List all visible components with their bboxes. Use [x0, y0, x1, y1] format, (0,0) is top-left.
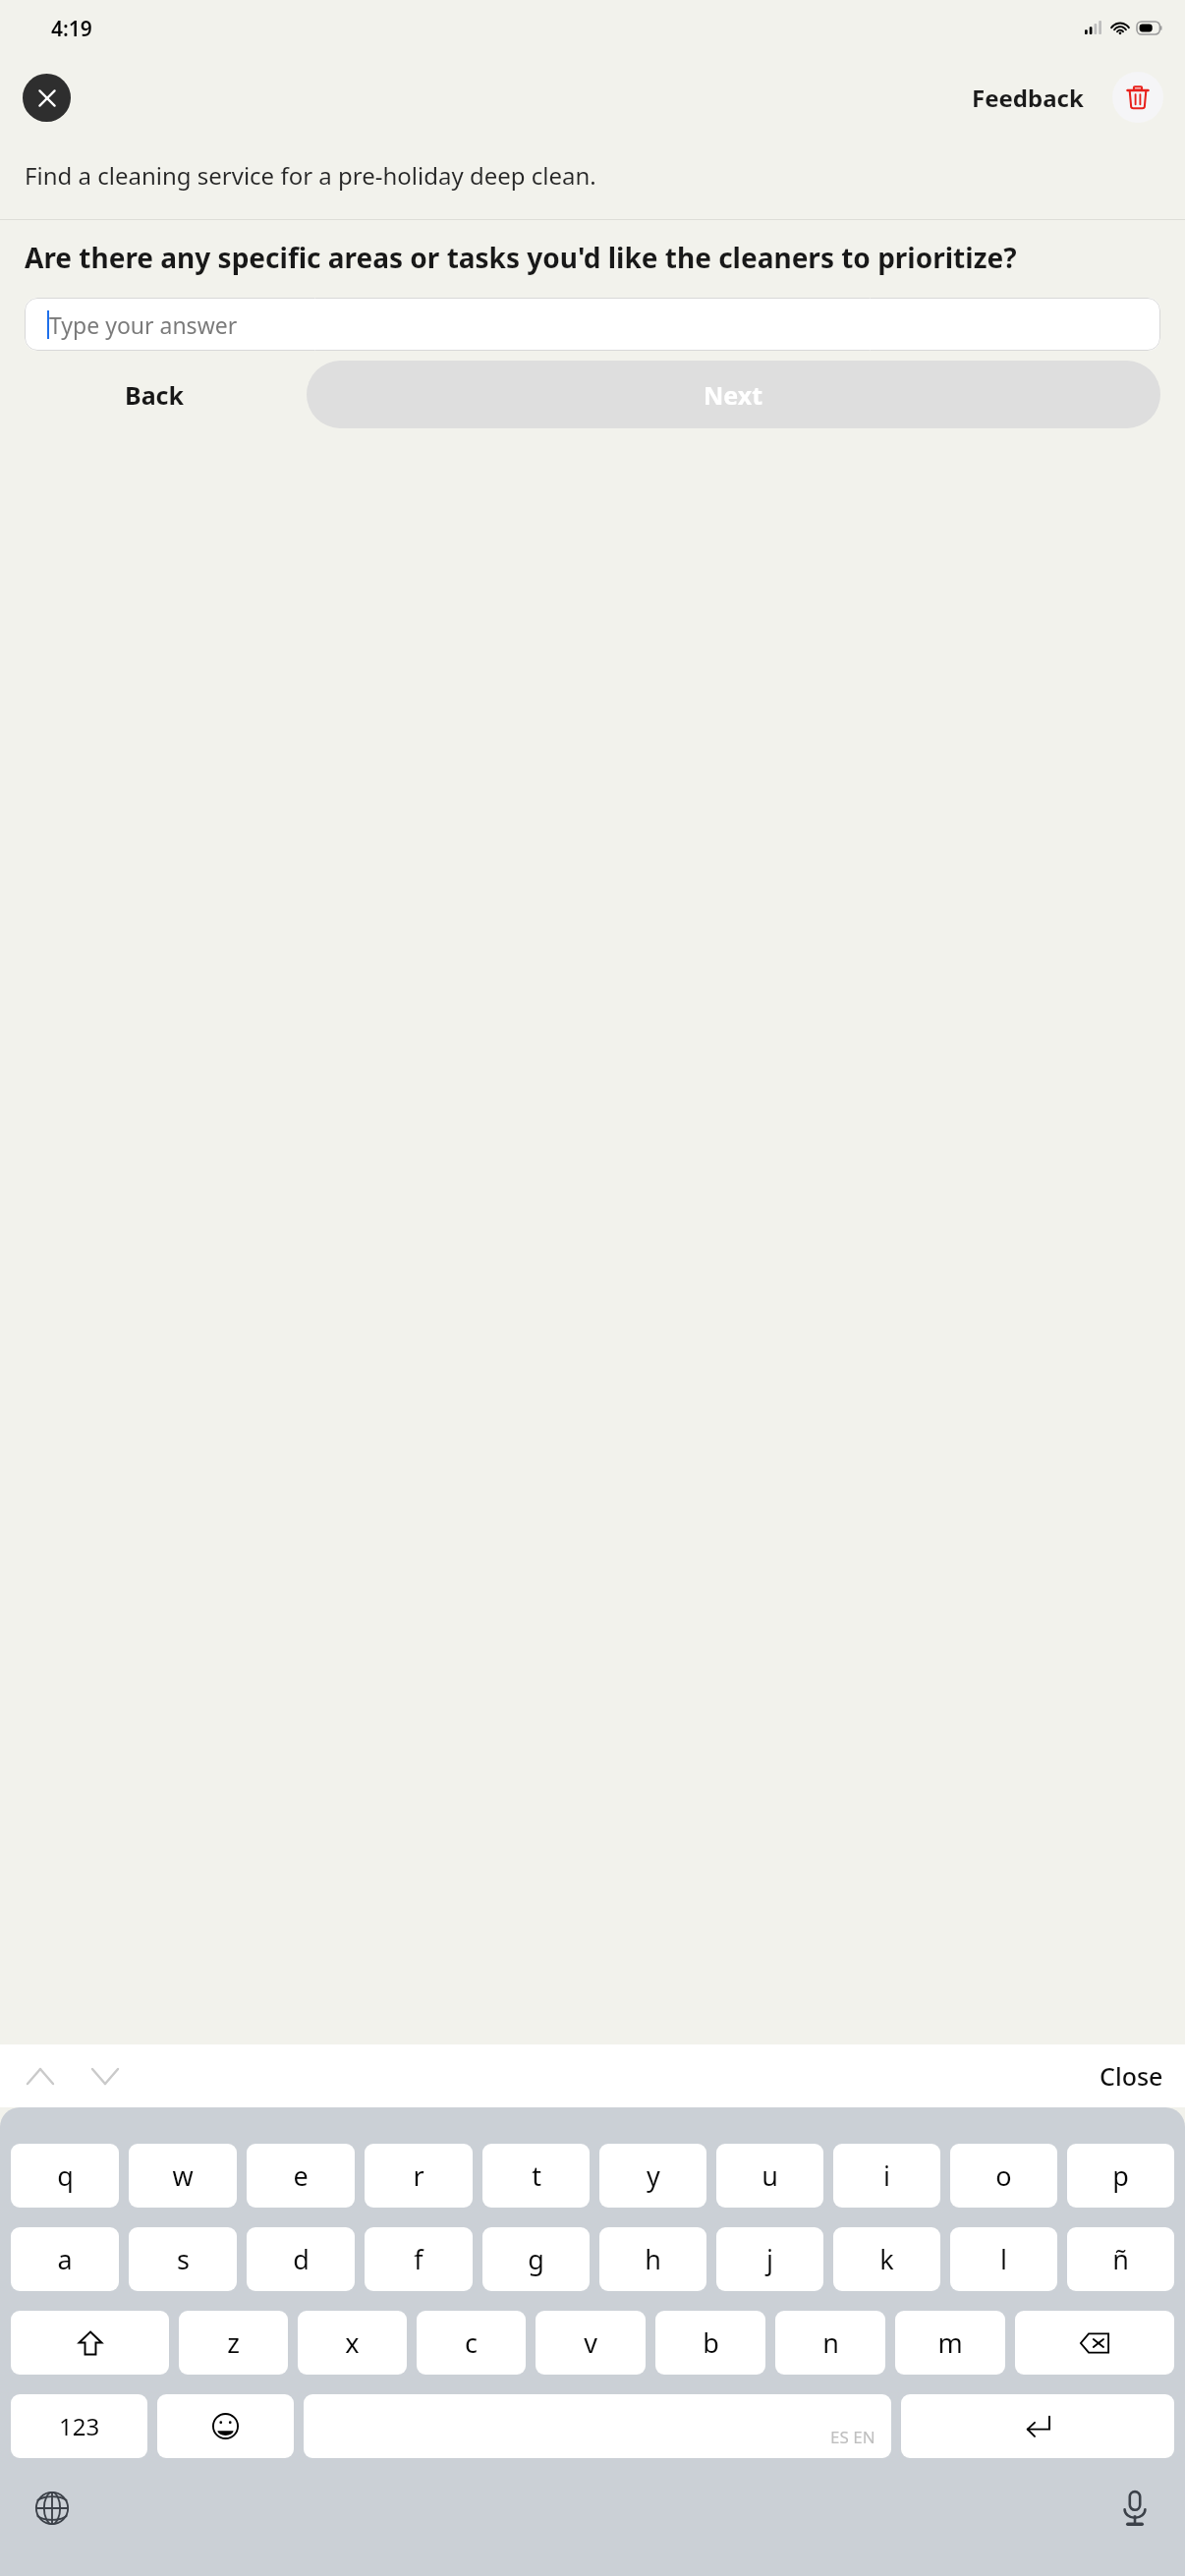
button[interactable]: b	[655, 2311, 765, 2375]
button[interactable]: Change language	[26, 2482, 79, 2535]
button[interactable]: f	[365, 2227, 473, 2291]
staticText: j	[766, 2241, 773, 2277]
button[interactable]: Space	[304, 2394, 891, 2458]
button[interactable]: j	[716, 2227, 823, 2291]
button[interactable]: Delete	[1112, 72, 1163, 123]
button[interactable]: y	[599, 2144, 706, 2208]
button[interactable]: Close	[23, 74, 71, 122]
staticText: i	[883, 2157, 890, 2194]
staticText: x	[345, 2324, 360, 2361]
button[interactable]: Emoji	[157, 2394, 294, 2458]
staticText: Close	[1100, 2059, 1163, 2093]
staticText: Are there any specific areas or tasks yo…	[25, 239, 1017, 276]
button[interactable]: e	[247, 2144, 355, 2208]
button[interactable]: n	[775, 2311, 885, 2375]
button[interactable]: Previous field	[14, 2049, 67, 2102]
staticText: v	[584, 2324, 597, 2361]
staticText: s	[177, 2241, 190, 2277]
button[interactable]: Backspace	[1015, 2311, 1174, 2375]
button[interactable]: Shift	[11, 2311, 169, 2375]
button[interactable]: m	[895, 2311, 1005, 2375]
button[interactable]: s	[129, 2227, 237, 2291]
staticText: d	[293, 2241, 310, 2277]
staticText: z	[227, 2324, 240, 2361]
staticText: Type your answer	[49, 309, 238, 340]
staticText: e	[293, 2157, 309, 2194]
button[interactable]: o	[950, 2144, 1057, 2208]
staticText: c	[465, 2324, 478, 2361]
button[interactable]: x	[298, 2311, 407, 2375]
staticText: f	[414, 2241, 423, 2277]
staticText: a	[57, 2241, 73, 2277]
button[interactable]: 123	[11, 2394, 147, 2458]
staticText: n	[822, 2324, 839, 2361]
staticText: b	[703, 2324, 719, 2361]
staticText: p	[1112, 2157, 1129, 2194]
staticText: w	[172, 2157, 194, 2194]
button[interactable]: k	[833, 2227, 940, 2291]
staticText: q	[57, 2157, 74, 2194]
button[interactable]: p	[1067, 2144, 1174, 2208]
button[interactable]: q	[11, 2144, 119, 2208]
button[interactable]: h	[599, 2227, 706, 2291]
staticText: ES EN	[830, 2426, 875, 2448]
staticText: h	[645, 2241, 661, 2277]
button[interactable]: t	[482, 2144, 590, 2208]
staticText: g	[528, 2241, 544, 2277]
staticText: l	[1000, 2241, 1007, 2277]
button[interactable]: a	[11, 2227, 119, 2291]
button[interactable]: Return	[901, 2394, 1174, 2458]
button[interactable]: d	[247, 2227, 355, 2291]
staticText: y	[647, 2157, 660, 2194]
button[interactable]: c	[417, 2311, 526, 2375]
staticText: Feedback	[972, 82, 1084, 114]
button[interactable]: Next field	[79, 2049, 132, 2102]
staticText: Next	[704, 378, 763, 412]
button[interactable]: l	[950, 2227, 1057, 2291]
staticText: t	[532, 2157, 541, 2194]
staticText: 123	[59, 2410, 100, 2442]
button[interactable]: u	[716, 2144, 823, 2208]
button[interactable]: Back	[25, 361, 285, 428]
staticText: Back	[125, 378, 185, 412]
staticText: 4:19	[51, 15, 92, 43]
button[interactable]: Voice input	[1108, 2482, 1161, 2535]
button[interactable]: z	[179, 2311, 288, 2375]
button[interactable]: i	[833, 2144, 940, 2208]
button[interactable]: Next	[307, 361, 1160, 428]
staticText: u	[762, 2157, 778, 2194]
button[interactable]: w	[129, 2144, 237, 2208]
button[interactable]: g	[482, 2227, 590, 2291]
button[interactable]: Close	[1100, 2059, 1163, 2093]
button[interactable]: ñ	[1067, 2227, 1174, 2291]
staticText: k	[879, 2241, 894, 2277]
button[interactable]: Type your answer	[25, 298, 1160, 351]
staticText: ñ	[1112, 2241, 1129, 2277]
button[interactable]: v	[536, 2311, 646, 2375]
staticText: m	[937, 2324, 963, 2361]
staticText: o	[995, 2157, 1012, 2194]
staticText: r	[413, 2157, 424, 2194]
button[interactable]: r	[365, 2144, 473, 2208]
staticText: Find a cleaning service for a pre-holida…	[25, 159, 596, 192]
